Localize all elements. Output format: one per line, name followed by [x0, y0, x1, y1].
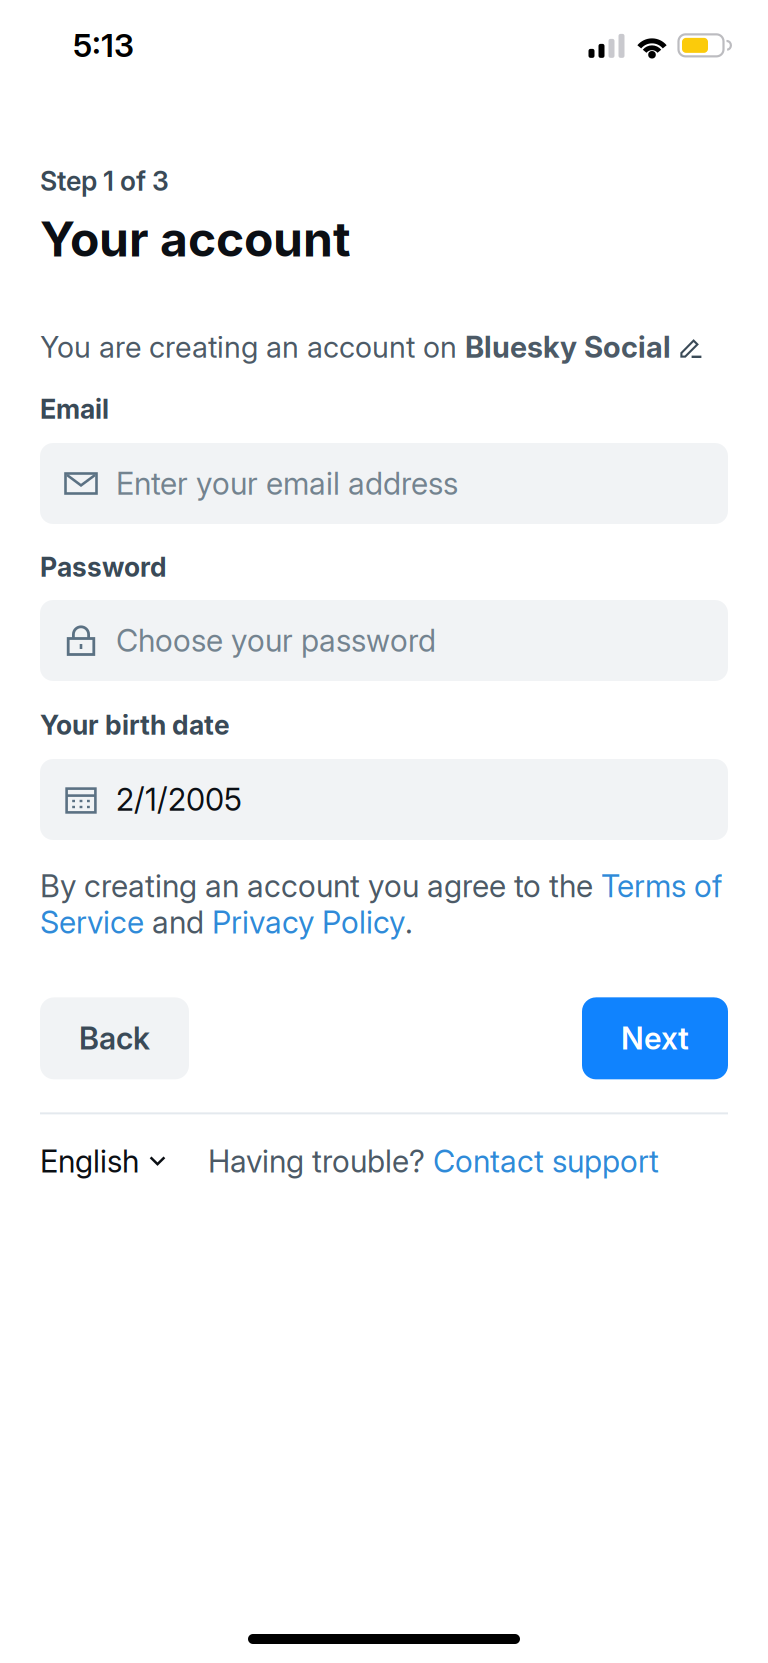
staticText: Your birth date	[40, 709, 230, 741]
button[interactable]: Contact support	[425, 1143, 659, 1180]
staticText: Email	[40, 393, 109, 425]
button[interactable]: Choose your password	[40, 600, 728, 681]
staticText: English	[40, 1143, 139, 1180]
staticText: Your account	[40, 210, 351, 268]
staticText: You are creating an account on Bluesky S…	[40, 330, 671, 364]
staticText: 2/1/2005	[116, 781, 242, 818]
staticText: Step 1 of 3	[40, 165, 169, 197]
staticText: Password	[40, 551, 167, 583]
button[interactable]: 2/1/2005	[40, 759, 728, 840]
button[interactable]: Back	[40, 997, 189, 1079]
staticText: Enter your email address	[116, 465, 458, 502]
button[interactable]: Next	[582, 997, 728, 1079]
staticText: Choose your password	[116, 622, 436, 659]
button[interactable]: Change hosting provider	[671, 334, 705, 360]
staticText: Contact support	[425, 1143, 659, 1180]
staticText: By creating an account you agree to the …	[40, 868, 722, 940]
staticText: Back	[79, 1020, 150, 1057]
staticText: 5:13	[73, 26, 134, 65]
staticText: Having trouble?	[208, 1143, 425, 1180]
button[interactable]: Enter your email address	[40, 443, 728, 524]
staticText: Next	[621, 1020, 689, 1057]
button[interactable]: English	[40, 1143, 166, 1180]
